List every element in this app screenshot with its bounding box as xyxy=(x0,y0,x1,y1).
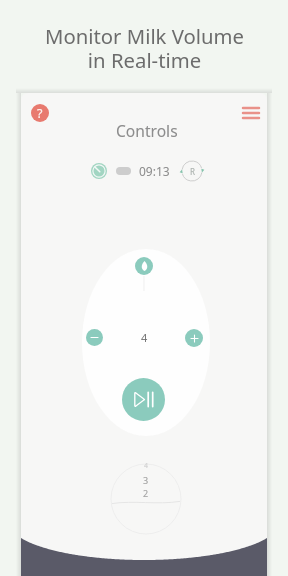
button[interactable]: Play or pause xyxy=(122,378,165,421)
staticText: Controls xyxy=(116,120,178,141)
staticText: ? xyxy=(37,105,43,122)
button[interactable]: Volume xyxy=(135,257,153,275)
staticText: 4 xyxy=(144,461,149,471)
staticText: Monitor Milk Volume in Real-time xyxy=(45,22,244,74)
button[interactable]: Decrease xyxy=(86,329,103,346)
button[interactable]: Increase xyxy=(185,329,203,347)
button[interactable]: Help xyxy=(31,104,49,122)
staticText: 3 xyxy=(143,474,149,484)
staticText: 2 xyxy=(143,487,149,497)
staticText: 09:13 xyxy=(139,163,170,179)
button[interactable]: Menu xyxy=(238,102,263,124)
staticText: 4 xyxy=(141,330,148,345)
staticText: R xyxy=(190,166,195,177)
